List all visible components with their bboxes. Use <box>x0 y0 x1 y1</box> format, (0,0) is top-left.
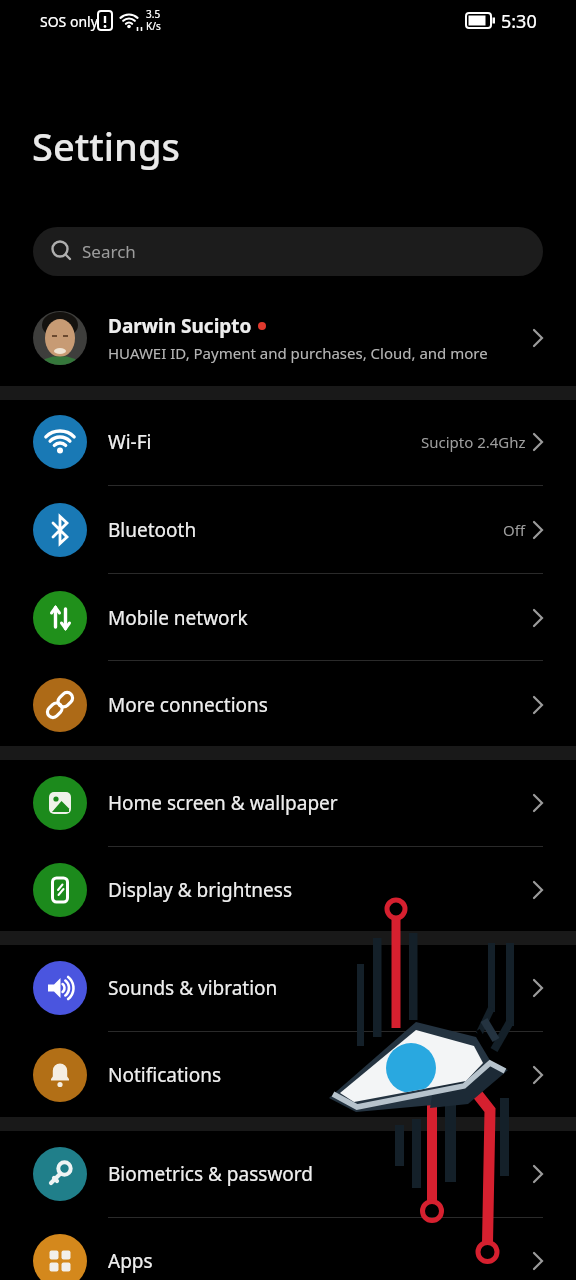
button[interactable]: Search <box>33 227 543 276</box>
button[interactable]: Wi-Fi <box>0 398 576 485</box>
staticText: Settings <box>32 120 180 172</box>
staticText: More connections <box>108 692 268 718</box>
button[interactable]: More connections <box>0 661 576 748</box>
staticText: Wi-Fi <box>108 429 152 455</box>
staticText: 3.5 <box>146 7 161 21</box>
staticText: Biometrics & password <box>108 1161 313 1187</box>
staticText: Off <box>503 520 526 540</box>
staticText: K/s <box>146 19 161 33</box>
staticText: Sounds & vibration <box>108 975 278 1001</box>
staticText: HUAWEI ID, Payment and purchases, Cloud,… <box>108 343 488 363</box>
staticText: Mobile network <box>108 605 248 631</box>
button[interactable]: Notifications <box>0 1031 576 1118</box>
staticText: Bluetooth <box>108 517 197 543</box>
staticText: Notifications <box>108 1062 222 1088</box>
button[interactable]: Display & brightness <box>0 846 576 933</box>
button[interactable]: Apps <box>0 1217 576 1280</box>
staticText: 5:30 <box>501 9 537 34</box>
button[interactable]: Bluetooth <box>0 486 576 573</box>
staticText: Darwin Sucipto <box>108 313 252 339</box>
staticText: Sucipto 2.4Ghz <box>421 432 526 452</box>
button[interactable]: Sounds & vibration <box>0 944 576 1031</box>
button[interactable]: Mobile network <box>0 574 576 661</box>
staticText: Search <box>82 240 136 263</box>
button[interactable]: Darwin Sucipto <box>0 298 576 378</box>
staticText: Home screen & wallpaper <box>108 790 338 816</box>
button[interactable]: Home screen & wallpaper <box>0 759 576 846</box>
staticText: SOS only <box>40 12 98 31</box>
staticText: Apps <box>108 1248 153 1274</box>
button[interactable]: Biometrics & password <box>0 1130 576 1217</box>
staticText: Display & brightness <box>108 877 292 903</box>
